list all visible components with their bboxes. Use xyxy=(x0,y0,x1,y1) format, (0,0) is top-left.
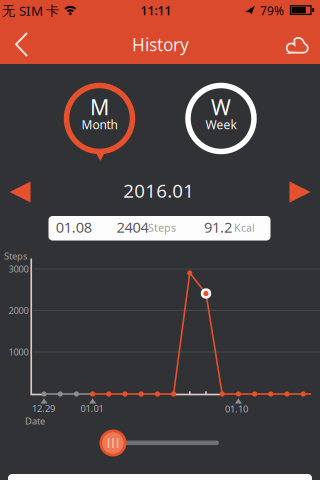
button[interactable]: Next month xyxy=(289,181,310,202)
staticText: 1000 xyxy=(8,346,28,358)
button[interactable]: W xyxy=(183,80,259,164)
staticText: 2000 xyxy=(8,304,28,317)
staticText: 11:11 xyxy=(140,2,171,18)
staticText: M xyxy=(90,93,109,121)
button[interactable]: M xyxy=(61,80,137,164)
staticText: Week xyxy=(205,116,236,132)
staticText: Steps xyxy=(4,250,27,262)
staticText: 01.10 xyxy=(225,403,248,415)
button[interactable]: Previous month xyxy=(9,181,30,202)
staticText: Date xyxy=(25,415,45,427)
staticText: 3000 xyxy=(8,263,28,275)
staticText: History xyxy=(132,33,189,56)
staticText: 79% xyxy=(260,2,284,18)
staticText: Kcal xyxy=(234,221,255,235)
button[interactable]: Sync to cloud xyxy=(283,33,311,57)
button[interactable]: Back xyxy=(9,31,33,58)
button[interactable]: Date slider xyxy=(99,429,126,456)
staticText: 2404 xyxy=(116,217,148,237)
staticText: 无 SIM 卡 xyxy=(2,2,59,19)
staticText: Month xyxy=(81,116,117,132)
staticText: 01.01 xyxy=(80,402,103,415)
staticText: 2016.01 xyxy=(123,178,194,203)
staticText: 91.2 xyxy=(204,217,232,237)
staticText: 12.29 xyxy=(32,402,55,415)
staticText: 01.08 xyxy=(56,217,92,237)
staticText: W xyxy=(211,93,231,121)
staticText: Steps xyxy=(148,221,176,235)
